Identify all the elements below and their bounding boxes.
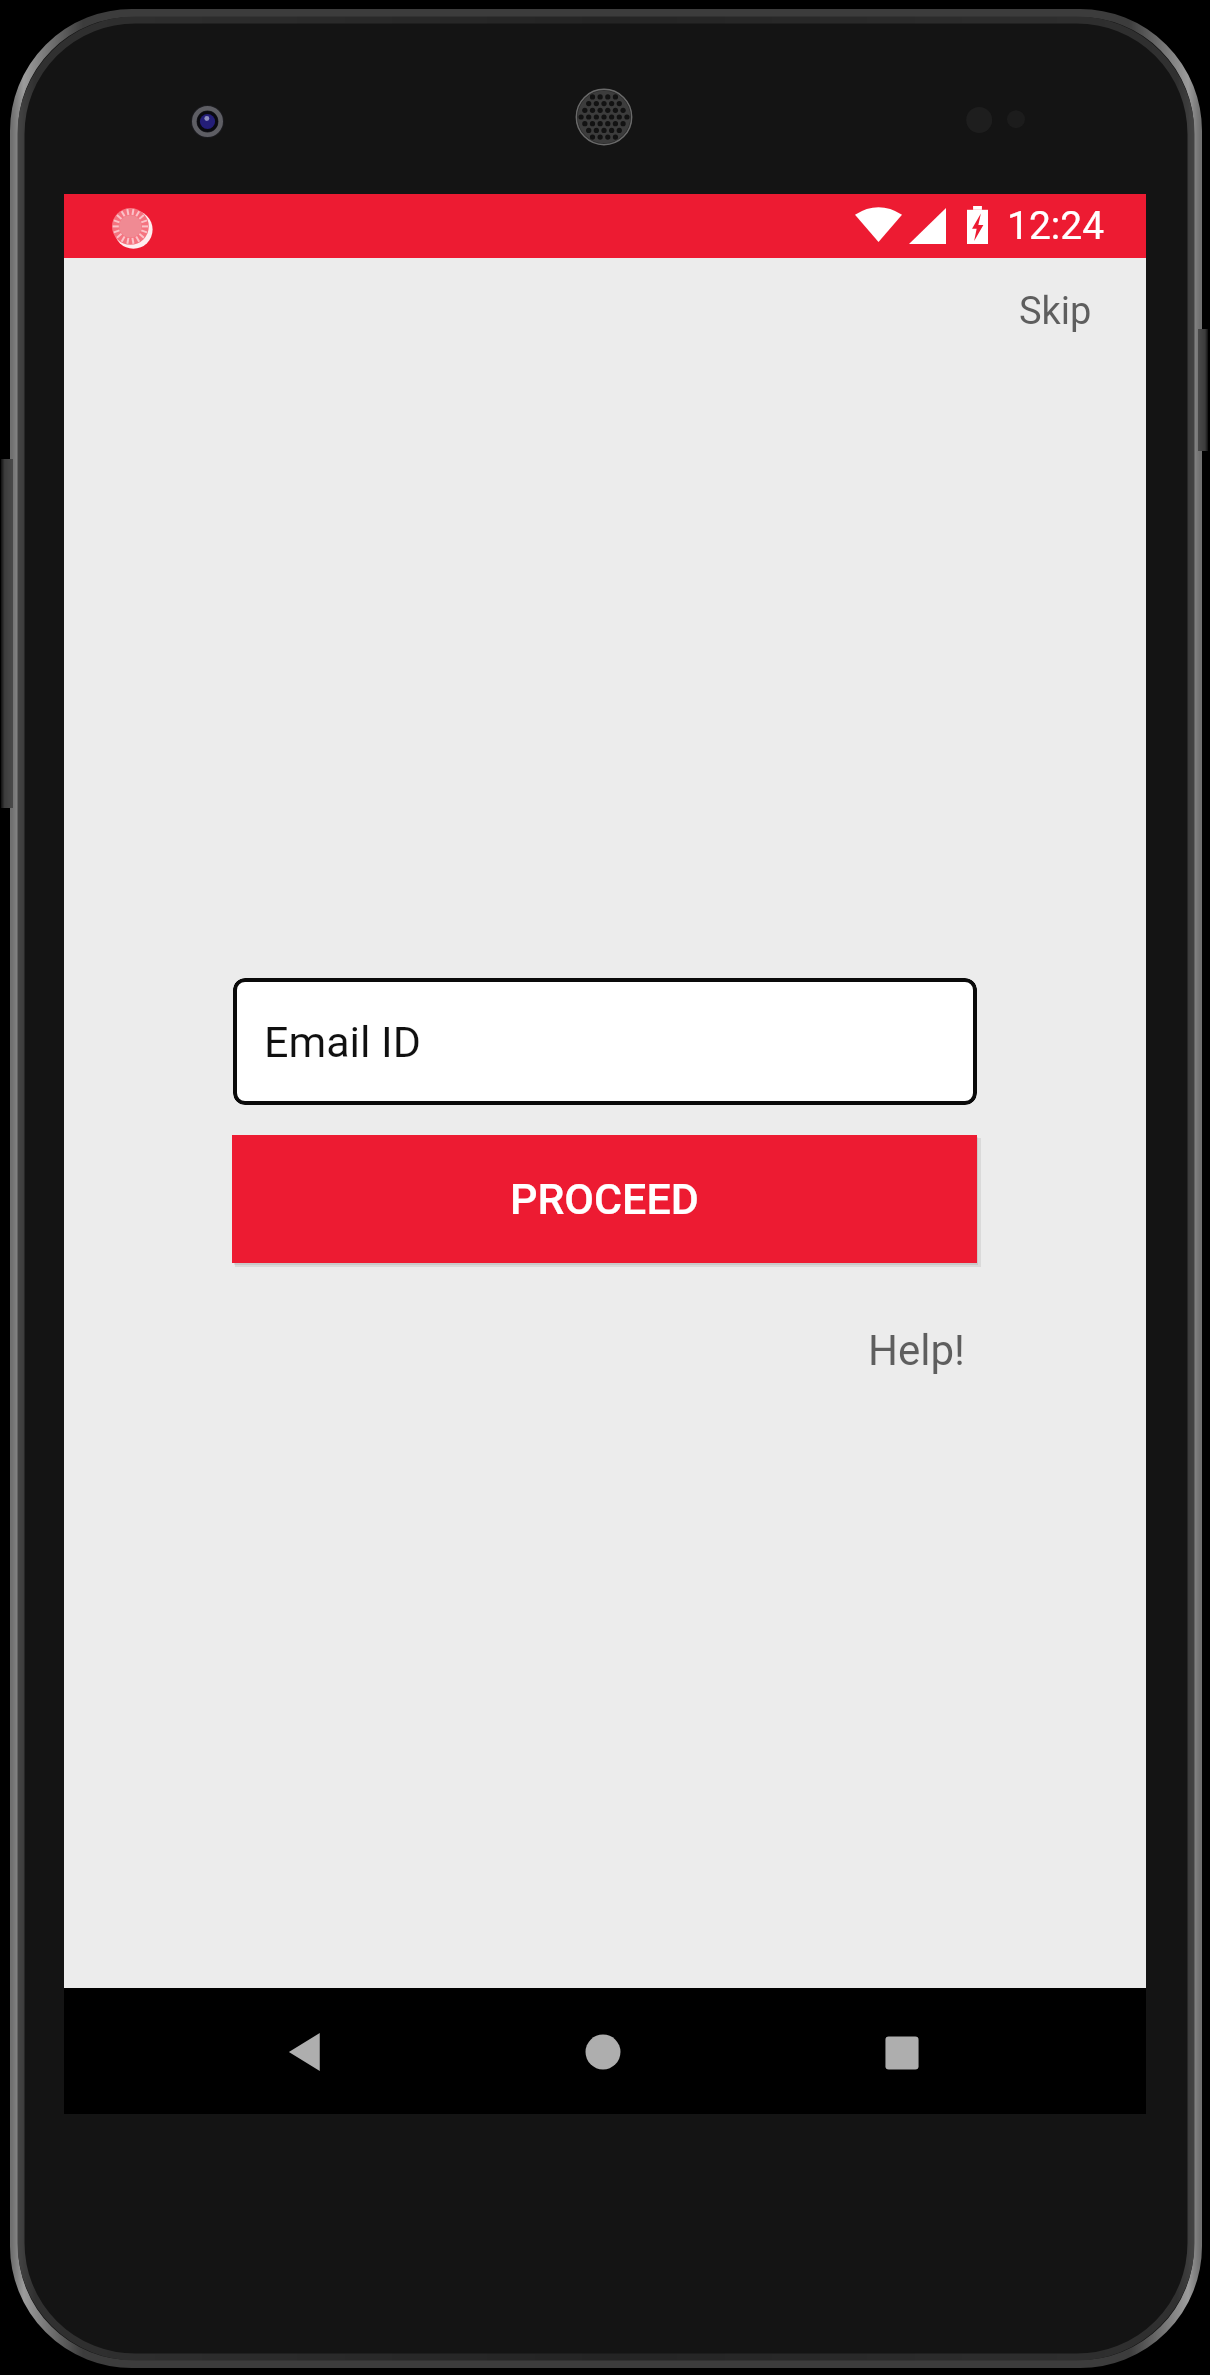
staticText: Email ID: [264, 1017, 422, 1067]
button[interactable]: Skip: [1011, 281, 1100, 342]
button[interactable]: Recent apps: [879, 2030, 925, 2076]
button[interactable]: Home: [580, 2029, 626, 2075]
button[interactable]: Back: [285, 2029, 331, 2075]
button[interactable]: Help!: [860, 1318, 973, 1383]
staticText: 12:24: [1007, 203, 1105, 249]
button[interactable]: PROCEED: [232, 1135, 977, 1263]
staticText: Skip: [1019, 289, 1092, 334]
button[interactable]: Email ID: [233, 978, 977, 1105]
staticText: PROCEED: [510, 1174, 699, 1224]
staticText: Help!: [868, 1326, 965, 1375]
